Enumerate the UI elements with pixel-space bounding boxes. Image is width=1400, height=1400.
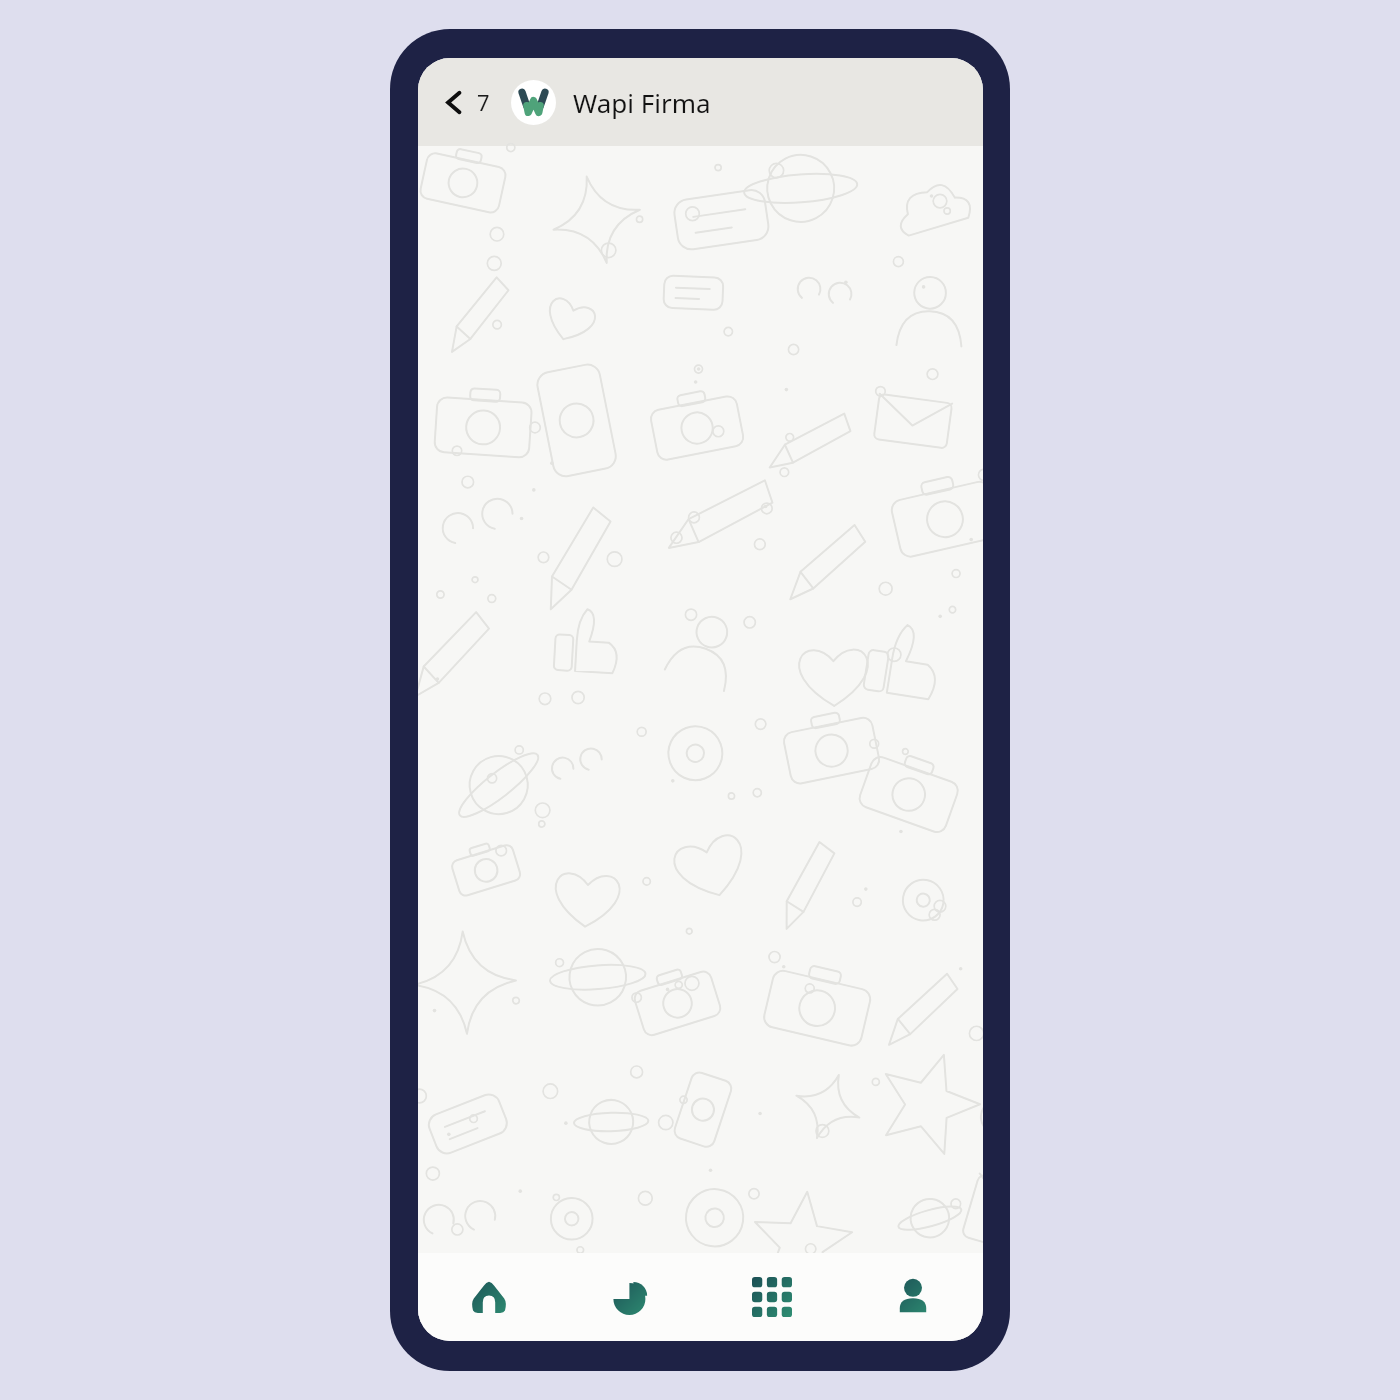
button[interactable]: Wapi Firma [573, 85, 711, 120]
button[interactable]: Wapi Firma avatar [511, 80, 556, 125]
button[interactable]: Back, 7 [432, 79, 498, 125]
staticText: 7 [477, 87, 490, 117]
button[interactable]: Home [418, 1253, 560, 1341]
button[interactable]: Apps [701, 1253, 842, 1341]
button[interactable]: Statistics [560, 1253, 701, 1341]
button[interactable]: Profile [842, 1253, 983, 1341]
